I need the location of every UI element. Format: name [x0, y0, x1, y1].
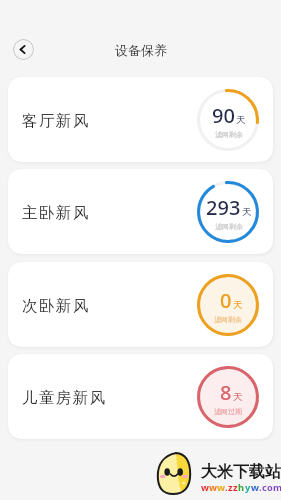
staticText: c: [262, 481, 267, 494]
staticText: 天: [236, 114, 246, 126]
staticText: w: [217, 481, 225, 494]
staticText: z: [233, 481, 238, 494]
staticText: .: [225, 481, 228, 494]
staticText: 儿童房新风: [22, 388, 107, 408]
button[interactable]: 客厅新风: [8, 77, 273, 162]
staticText: 0: [220, 287, 232, 314]
staticText: 客厅新风: [22, 111, 90, 131]
staticText: m: [273, 481, 281, 494]
staticText: 次卧新风: [22, 296, 90, 316]
staticText: 滤网剩余: [215, 130, 243, 139]
staticText: 90: [212, 102, 235, 129]
button[interactable]: Back: [13, 39, 34, 60]
staticText: 设备保养: [115, 42, 167, 58]
staticText: 滤网过期: [214, 407, 242, 416]
staticText: 滤网剩余: [215, 222, 243, 231]
staticText: w: [251, 481, 259, 494]
staticText: 293: [206, 194, 241, 221]
staticText: h: [238, 481, 245, 494]
staticText: y: [245, 481, 251, 494]
staticText: 大米下载站: [201, 462, 281, 482]
staticText: 主卧新风: [22, 203, 90, 223]
staticText: w: [209, 481, 217, 494]
staticText: w: [201, 481, 209, 494]
staticText: o: [267, 481, 273, 494]
button[interactable]: 次卧新风: [8, 262, 273, 347]
staticText: 天: [242, 206, 252, 218]
staticText: 8: [220, 379, 232, 406]
button[interactable]: 主卧新风: [8, 169, 273, 254]
staticText: 滤网剩余: [214, 315, 242, 324]
staticText: 天: [233, 391, 243, 403]
staticText: z: [228, 481, 233, 494]
staticText: .: [259, 481, 262, 494]
button[interactable]: 儿童房新风: [8, 354, 273, 439]
staticText: 天: [233, 299, 243, 311]
